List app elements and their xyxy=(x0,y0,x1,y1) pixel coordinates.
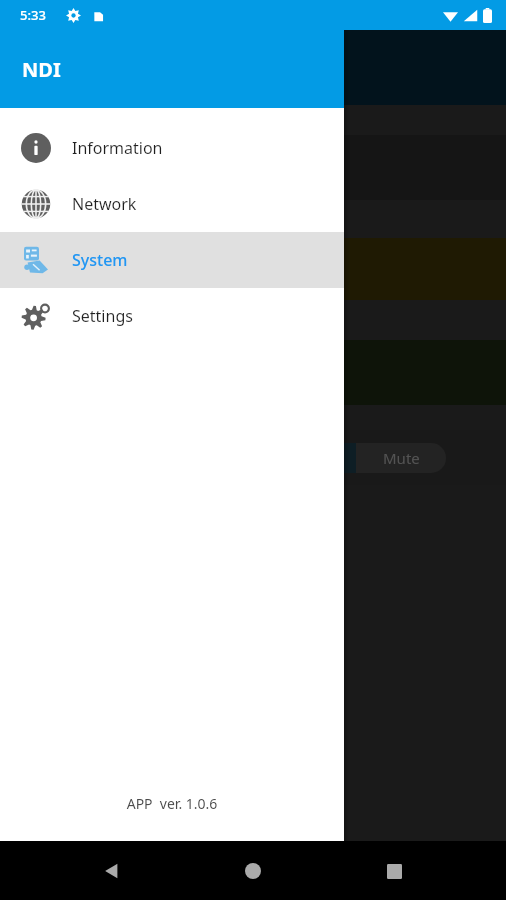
staticText: 5:33 xyxy=(20,6,46,24)
other: Settings xyxy=(21,301,51,331)
button[interactable]: System xyxy=(0,232,344,288)
other: Information xyxy=(21,133,51,163)
button[interactable]: Back xyxy=(92,851,132,891)
staticText: NDI xyxy=(22,56,61,83)
button[interactable]: Information xyxy=(0,120,344,176)
staticText: Information xyxy=(72,137,163,159)
staticText: APP ver. 1.0.6 xyxy=(0,794,344,813)
staticText: Network xyxy=(72,193,137,215)
other: Network xyxy=(21,189,51,219)
button[interactable]: Home xyxy=(233,851,273,891)
other: System xyxy=(21,245,51,275)
button[interactable]: Network xyxy=(0,176,344,232)
staticText: System xyxy=(72,249,128,271)
button[interactable]: Settings xyxy=(0,288,344,344)
staticText: Settings xyxy=(72,305,133,327)
button[interactable]: Recent apps xyxy=(374,851,414,891)
staticText: Mute xyxy=(383,448,420,468)
